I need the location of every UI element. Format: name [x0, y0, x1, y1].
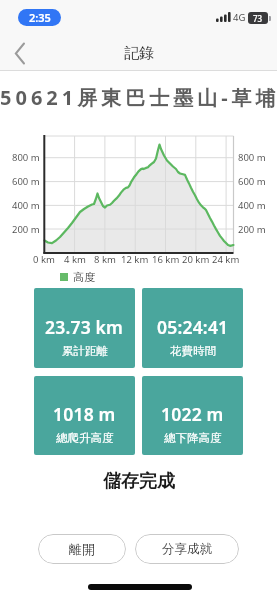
staticText: 200 m	[12, 223, 40, 236]
staticText: 24 km	[212, 253, 240, 266]
staticText: 05:24:41	[157, 315, 229, 339]
staticText: 600 m	[238, 175, 266, 188]
staticText: 12 km	[121, 253, 149, 266]
staticText: 16 km	[152, 253, 180, 266]
staticText: 累計距離	[62, 344, 108, 358]
button[interactable]	[8, 38, 38, 68]
button[interactable]: 離開	[38, 534, 126, 564]
staticText: 儲存完成	[103, 470, 175, 492]
staticText: 總下降高度	[164, 431, 222, 445]
staticText: 分享成就	[162, 541, 212, 557]
staticText: 800 m	[238, 151, 266, 164]
staticText: 1018 m	[53, 402, 116, 426]
staticText: 400 m	[12, 199, 40, 212]
staticText: 記錄	[124, 44, 154, 62]
staticText: 400 m	[238, 199, 266, 212]
staticText: 4G	[233, 11, 245, 24]
staticText: 0 km	[33, 253, 55, 266]
staticText: 1022 m	[161, 402, 224, 426]
staticText: 23.73 km	[45, 315, 124, 339]
button[interactable]: 分享成就	[135, 534, 239, 564]
staticText: 73	[253, 13, 263, 24]
staticText: 200 m	[238, 223, 266, 236]
staticText: 花費時間	[170, 344, 216, 358]
staticText: 離開	[69, 541, 95, 557]
staticText: 20 km	[182, 253, 210, 266]
staticText: 8 km	[94, 253, 116, 266]
staticText: 4 km	[64, 253, 86, 266]
staticText: 高度	[73, 270, 95, 283]
staticText: 600 m	[12, 175, 40, 188]
staticText: 2:35	[29, 10, 51, 25]
staticText: 800 m	[12, 151, 40, 164]
staticText: 50621屏東巴士墨山-草埔越	[0, 84, 277, 110]
staticText: 總爬升高度	[56, 431, 114, 445]
